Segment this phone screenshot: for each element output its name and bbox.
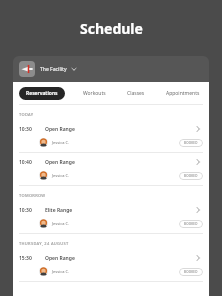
staticText: Jessica C. — [52, 269, 70, 274]
staticText: TOMORROW — [19, 193, 46, 198]
button[interactable]: Classes — [124, 87, 148, 100]
button[interactable]: 10:30 — [13, 120, 209, 152]
button[interactable]: 10:40 — [13, 153, 209, 185]
button[interactable]: Reservations — [19, 87, 65, 100]
button[interactable]: 10:30 — [13, 201, 209, 233]
staticText: 10:30 — [19, 126, 32, 133]
staticText: Jessica C. — [52, 173, 70, 178]
staticText: BOOKED — [184, 141, 198, 145]
staticText: Appointments — [166, 90, 200, 97]
button[interactable]: Open details — [193, 253, 203, 263]
staticText: Jessica C. — [52, 221, 70, 226]
staticText: Elite Range — [45, 207, 73, 214]
button[interactable]: 15:30 — [13, 249, 209, 281]
staticText: Schedule — [80, 19, 143, 38]
button[interactable]: BOOKED — [179, 172, 203, 180]
staticText: BOOKED — [184, 174, 198, 178]
button[interactable]: Open details — [193, 205, 203, 215]
button[interactable]: Open details — [193, 124, 203, 134]
button[interactable]: Workouts — [80, 87, 109, 100]
staticText: Classes — [127, 90, 145, 97]
staticText: Reservations — [26, 90, 58, 97]
staticText: 10:30 — [19, 207, 32, 214]
button[interactable]: Open details — [193, 157, 203, 167]
staticText: Jessica C. — [52, 140, 70, 145]
staticText: THURSDAY, 24 AUGUST — [19, 241, 69, 246]
button[interactable]: BOOKED — [179, 139, 203, 147]
staticText: TODAY — [19, 112, 34, 117]
button[interactable]: BOOKED — [179, 268, 203, 276]
staticText: Open Range — [45, 255, 75, 262]
button[interactable]: Appointments — [163, 87, 203, 100]
button[interactable]: BOOKED — [179, 220, 203, 228]
staticText: Open Range — [45, 126, 75, 133]
staticText: Workouts — [83, 90, 106, 97]
staticText: BOOKED — [184, 222, 198, 226]
staticText: 15:30 — [19, 255, 32, 262]
button[interactable]: The Facility — [13, 56, 209, 82]
staticText: 10:40 — [19, 159, 32, 166]
staticText: Open Range — [45, 159, 75, 166]
staticText: The Facility — [40, 66, 67, 73]
staticText: BOOKED — [184, 270, 198, 274]
